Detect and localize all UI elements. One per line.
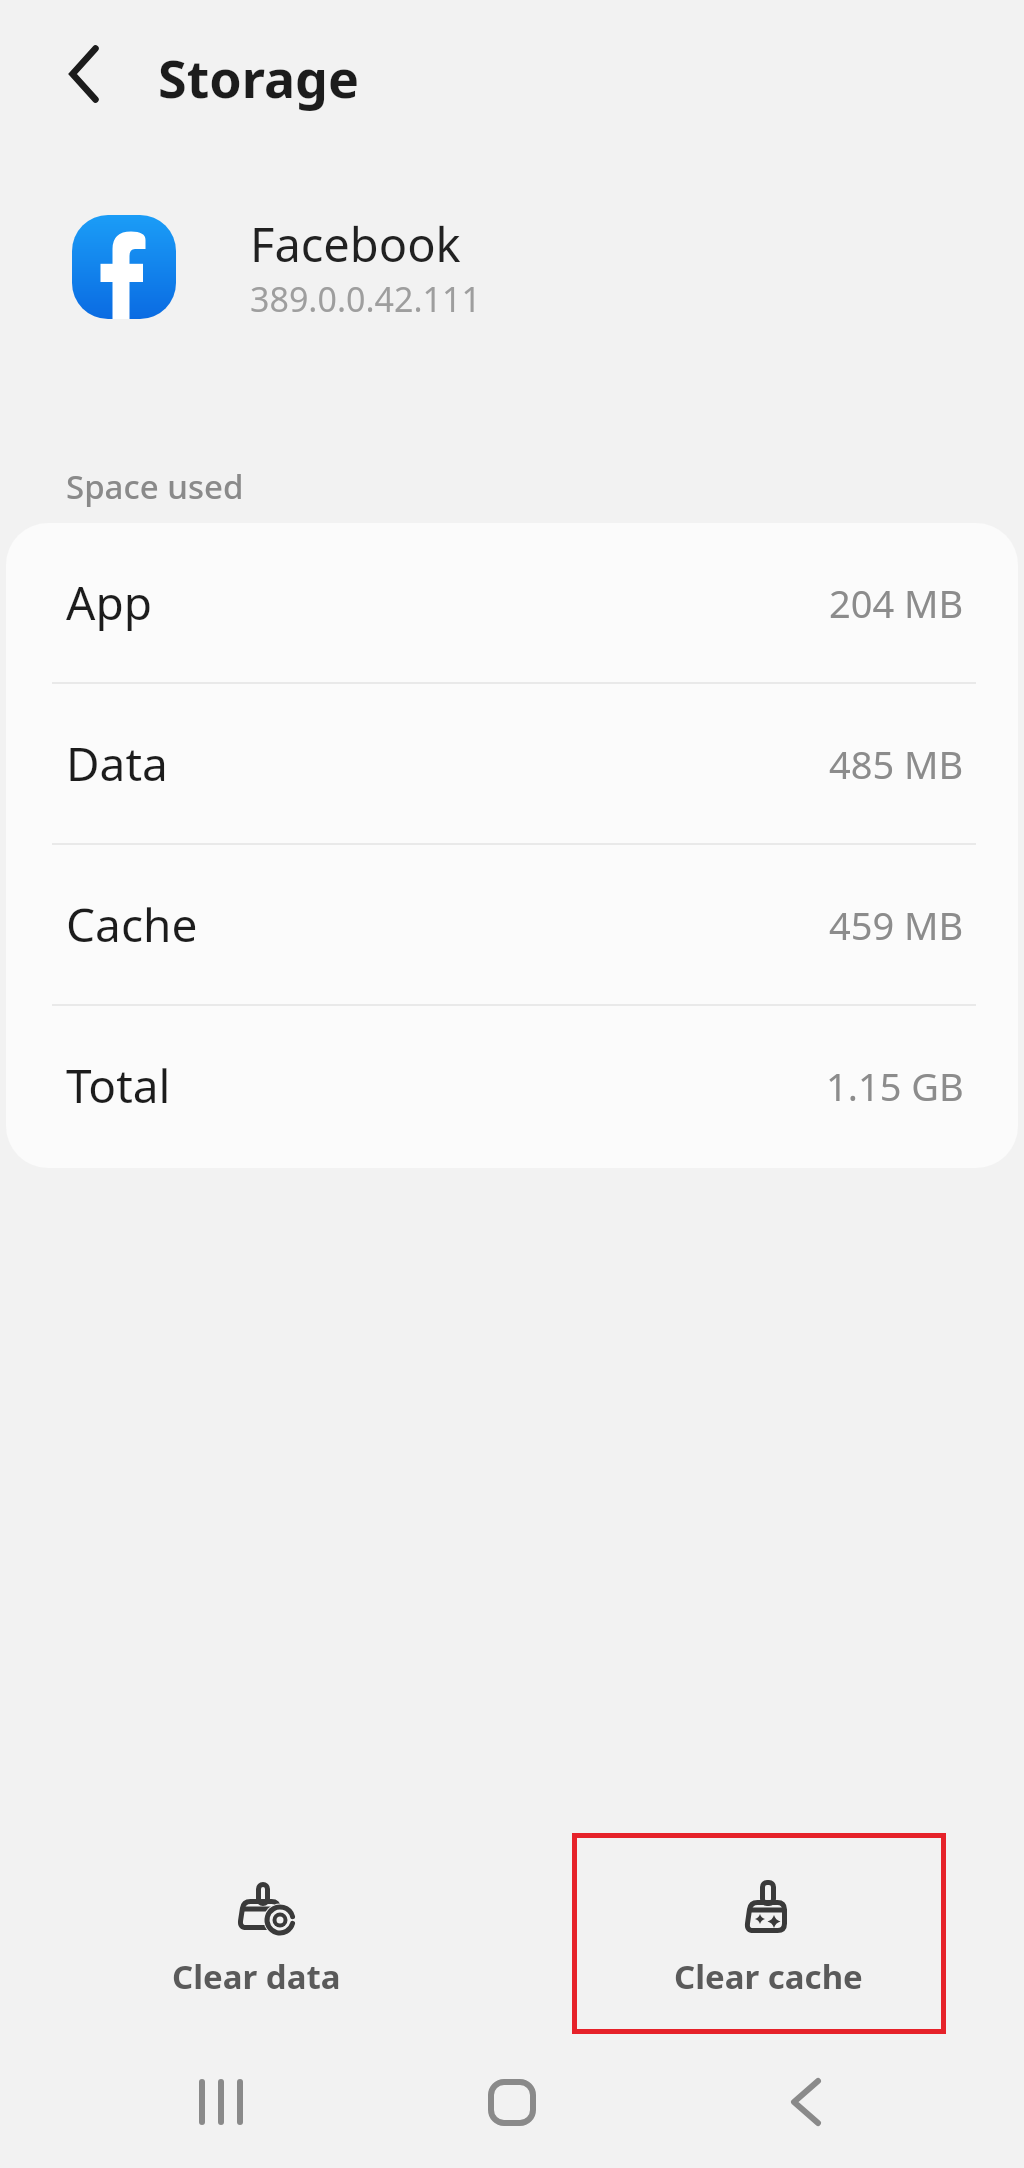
staticText: 459 MB	[829, 899, 964, 951]
staticText: Storage	[158, 42, 359, 113]
button[interactable]	[44, 34, 124, 114]
staticText: 485 MB	[829, 738, 964, 790]
staticText: Facebook	[250, 212, 461, 276]
staticText: Cache	[66, 893, 198, 956]
staticText: 204 MB	[829, 577, 964, 629]
button[interactable]	[442, 2050, 582, 2154]
staticText: Clear cache	[674, 1954, 863, 1999]
button[interactable]	[736, 2050, 876, 2154]
staticText: 389.0.0.42.111	[250, 276, 481, 322]
staticText: App	[66, 571, 152, 634]
staticText: Data	[66, 732, 168, 795]
staticText: Space used	[66, 464, 244, 509]
button[interactable]: Clear cache	[512, 1878, 1024, 1999]
button[interactable]: Clear data	[0, 1878, 512, 1999]
staticText: 1.15 GB	[826, 1060, 964, 1112]
staticText: Total	[66, 1054, 171, 1117]
staticText: Clear data	[172, 1954, 341, 1999]
button[interactable]	[151, 2050, 291, 2154]
